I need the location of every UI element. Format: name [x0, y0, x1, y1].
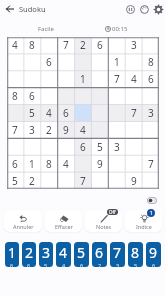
button[interactable]: 7: [74, 172, 91, 189]
button[interactable]: [91, 172, 108, 189]
button[interactable]: 8: [142, 53, 159, 70]
button[interactable]: [108, 104, 125, 121]
button[interactable]: 7: [57, 37, 74, 53]
button[interactable]: [91, 70, 108, 87]
button[interactable]: [108, 37, 125, 53]
button[interactable]: 9: [91, 155, 108, 172]
button[interactable]: 2: [40, 121, 57, 138]
button[interactable]: 9: [146, 242, 161, 267]
button[interactable]: 4: [125, 70, 142, 87]
button[interactable]: 8: [128, 242, 143, 267]
button[interactable]: 2: [74, 37, 91, 53]
button[interactable]: 1: [147, 209, 155, 217]
button[interactable]: [142, 37, 159, 53]
button[interactable]: 7: [142, 155, 159, 172]
button[interactable]: 3: [39, 242, 53, 267]
button[interactable]: 1: [5, 242, 19, 267]
button[interactable]: [74, 87, 91, 104]
button[interactable]: 4: [7, 37, 23, 53]
button[interactable]: 6: [142, 70, 159, 87]
button[interactable]: [57, 70, 74, 87]
button[interactable]: 6: [57, 104, 74, 121]
button[interactable]: [74, 53, 91, 70]
button[interactable]: [7, 70, 23, 87]
button[interactable]: 3: [108, 138, 125, 155]
button[interactable]: 4: [56, 242, 71, 267]
button[interactable]: 5: [91, 138, 108, 155]
button[interactable]: Effacer: [45, 210, 82, 232]
button[interactable]: 3: [142, 104, 159, 121]
button[interactable]: [142, 138, 159, 155]
button[interactable]: 2: [23, 172, 40, 189]
button[interactable]: Annuler: [4, 210, 42, 232]
button[interactable]: [23, 53, 40, 70]
button[interactable]: 6: [91, 37, 108, 53]
button[interactable]: 7: [125, 104, 142, 121]
button[interactable]: Theme: [137, 2, 151, 16]
button[interactable]: [7, 138, 23, 155]
button[interactable]: Indice: [125, 210, 162, 232]
button[interactable]: 8: [40, 155, 57, 172]
button[interactable]: [40, 172, 57, 189]
button[interactable]: 5: [74, 242, 89, 267]
button[interactable]: [91, 87, 108, 104]
button[interactable]: 3: [125, 37, 142, 53]
button[interactable]: [91, 121, 108, 138]
button[interactable]: 1: [23, 155, 40, 172]
button[interactable]: [57, 172, 74, 189]
button[interactable]: Auto hint toggle: [147, 197, 157, 204]
button[interactable]: [125, 87, 142, 104]
button[interactable]: [142, 172, 159, 189]
button[interactable]: 5: [23, 104, 40, 121]
button[interactable]: [108, 121, 125, 138]
button[interactable]: Notes: [85, 210, 122, 232]
button[interactable]: 9: [125, 172, 142, 189]
button[interactable]: [108, 87, 125, 104]
button[interactable]: [142, 87, 159, 104]
button[interactable]: [23, 138, 40, 155]
button[interactable]: 7: [108, 70, 125, 87]
button[interactable]: 1: [108, 53, 125, 70]
button[interactable]: [57, 53, 74, 70]
button[interactable]: 6: [7, 155, 23, 172]
button[interactable]: 4: [40, 104, 57, 121]
button[interactable]: [23, 70, 40, 87]
button[interactable]: [7, 104, 23, 121]
button[interactable]: [74, 155, 91, 172]
button[interactable]: [40, 138, 57, 155]
button[interactable]: [7, 53, 23, 70]
button[interactable]: 8: [23, 37, 40, 53]
button[interactable]: 7: [7, 121, 23, 138]
button[interactable]: [40, 70, 57, 87]
button[interactable]: Off: [107, 209, 118, 215]
button[interactable]: 2: [22, 242, 36, 267]
button[interactable]: 7: [110, 242, 125, 267]
button[interactable]: 6: [40, 53, 57, 70]
button[interactable]: Settings: [151, 2, 165, 16]
button[interactable]: [125, 53, 142, 70]
button[interactable]: 6: [23, 87, 40, 104]
button[interactable]: 6: [74, 138, 91, 155]
button[interactable]: 6: [92, 242, 107, 267]
button[interactable]: Pause: [123, 2, 137, 16]
button[interactable]: 3: [23, 121, 40, 138]
button[interactable]: 4: [74, 121, 91, 138]
button[interactable]: [57, 138, 74, 155]
button[interactable]: [125, 138, 142, 155]
button[interactable]: [74, 104, 91, 121]
button[interactable]: [40, 87, 57, 104]
button[interactable]: [57, 87, 74, 104]
button[interactable]: [91, 53, 108, 70]
button[interactable]: [108, 172, 125, 189]
button[interactable]: 1: [74, 70, 91, 87]
button[interactable]: 5: [7, 172, 23, 189]
button[interactable]: [40, 37, 57, 53]
button[interactable]: 4: [57, 155, 74, 172]
button[interactable]: [108, 155, 125, 172]
button[interactable]: 8: [7, 87, 23, 104]
button[interactable]: [142, 121, 159, 138]
button[interactable]: [91, 104, 108, 121]
button[interactable]: Back: [3, 2, 17, 16]
button[interactable]: 9: [57, 121, 74, 138]
button[interactable]: [125, 121, 142, 138]
